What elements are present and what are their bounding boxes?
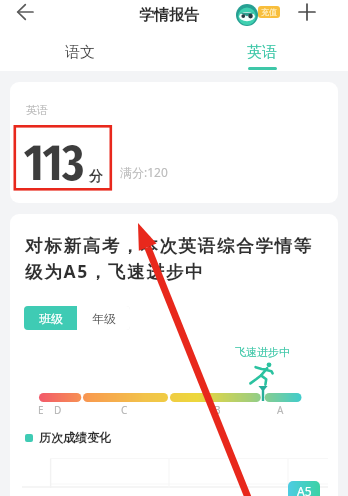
- button[interactable]: 年级: [77, 306, 130, 330]
- staticText: 班级: [39, 311, 63, 326]
- staticText: B: [214, 403, 221, 417]
- staticText: A: [277, 403, 284, 417]
- staticText: 年级: [92, 311, 116, 326]
- button[interactable]: Add: [292, 0, 322, 27]
- staticText: 对标新高考，本次英语综合学情等级为A5，飞速进步中: [25, 235, 321, 283]
- button[interactable]: Back: [9, 0, 40, 27]
- button[interactable]: 班级: [24, 306, 77, 330]
- staticText: 飞速进步中: [235, 345, 290, 359]
- staticText: C: [121, 403, 128, 417]
- button[interactable]: Assistant: [234, 2, 281, 24]
- staticText: A5: [297, 483, 312, 496]
- staticText: 分: [89, 168, 103, 186]
- staticText: 充值: [261, 7, 277, 17]
- staticText: 113: [24, 133, 84, 193]
- staticText: 学情报告: [139, 6, 199, 25]
- staticText: 英语: [247, 43, 277, 62]
- staticText: 语文: [65, 43, 95, 62]
- staticText: D: [54, 403, 62, 417]
- button[interactable]: 语文: [40, 30, 120, 71]
- staticText: 满分:120: [120, 164, 168, 180]
- button[interactable]: 英语: [222, 30, 302, 71]
- button[interactable]: A5: [288, 481, 320, 496]
- staticText: 英语: [26, 103, 48, 117]
- staticText: 历次成绩变化: [39, 430, 111, 445]
- staticText: E: [38, 403, 44, 417]
